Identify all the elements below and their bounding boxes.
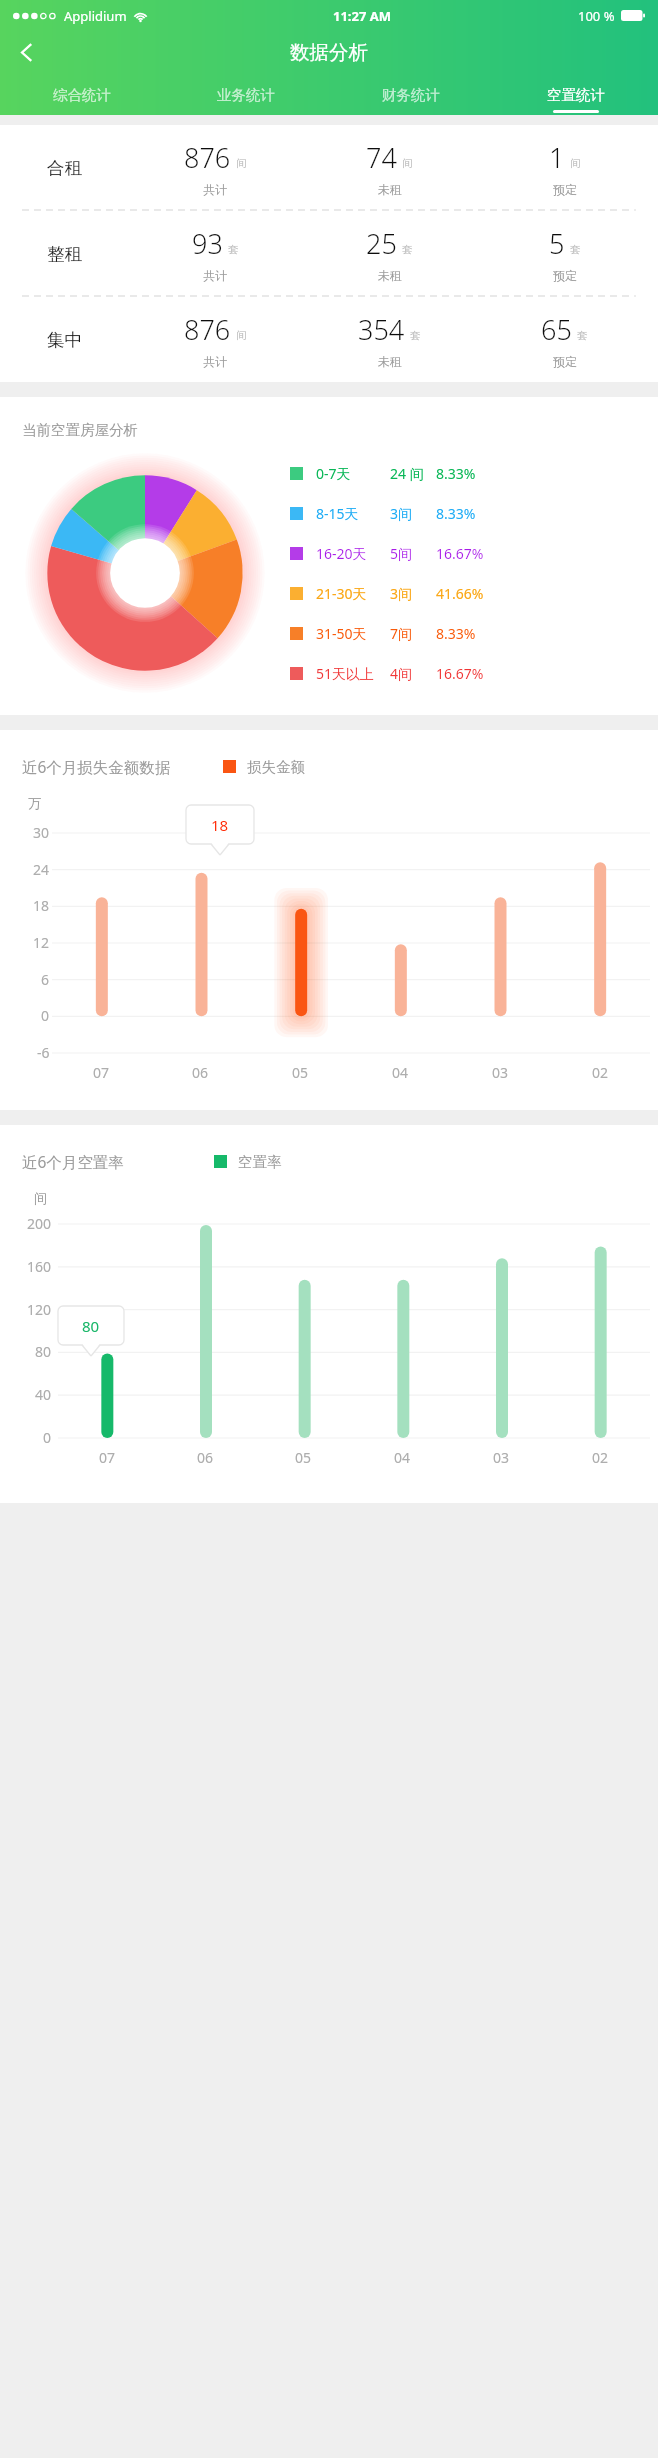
staticText: 25 [366,225,397,262]
staticText: 套 [570,243,581,256]
button[interactable]: Back [5,30,50,75]
staticText: 51天以上 [316,664,375,683]
staticText: 套 [577,329,588,342]
staticText: 8.33% [436,624,476,643]
staticText: 间 [236,329,247,342]
staticText: 0 [41,1006,50,1025]
staticText: 集中 [47,329,82,351]
staticText: 0 [43,1428,52,1447]
staticText: 近6个月损失金额数据 [22,756,171,777]
staticText: 空置率 [238,1153,282,1171]
staticText: 数据分析 [290,40,368,65]
staticText: 预定 [553,268,577,283]
staticText: -6 [37,1043,50,1062]
staticText: 18 [33,896,50,915]
staticText: 07 [93,1063,110,1082]
button[interactable]: 0-7天 [290,453,658,493]
staticText: 24 [33,860,50,879]
staticText: 间 [34,1190,47,1206]
staticText: 万 [28,795,41,811]
staticText: Applidium [64,7,127,25]
staticText: 间 [402,157,413,170]
staticText: 5 [549,225,565,262]
button[interactable]: 16-20天 [290,533,658,573]
staticText: 财务统计 [382,86,440,104]
staticText: 04 [394,1448,411,1467]
staticText: 损失金额 [247,758,305,776]
staticText: 7间 [390,624,413,643]
staticText: 41.66% [436,584,484,603]
staticText: 综合统计 [53,86,111,104]
staticText: 16.67% [436,544,484,563]
staticText: 业务统计 [217,86,275,104]
staticText: 间 [570,157,581,170]
staticText: 套 [410,329,421,342]
staticText: 200 [27,1214,52,1233]
staticText: 8.33% [436,464,476,483]
staticText: 套 [402,243,413,256]
staticText: 05 [292,1063,309,1082]
staticText: 预定 [553,182,577,197]
staticText: 整租 [47,243,82,265]
staticText: 预定 [553,354,577,369]
staticText: 合租 [47,157,82,179]
staticText: 未租 [378,354,402,369]
staticText: 共计 [203,182,227,197]
staticText: 06 [192,1063,209,1082]
staticText: 03 [492,1063,509,1082]
staticText: 共计 [203,354,227,369]
button[interactable]: 集中 [0,297,658,382]
staticText: 未租 [378,182,402,197]
staticText: 02 [592,1063,609,1082]
staticText: 16.67% [436,664,484,683]
button[interactable]: 整租 [0,211,658,296]
staticText: 65 [541,311,572,348]
staticText: 8-15天 [316,504,359,523]
staticText: 21-30天 [316,584,367,603]
staticText: 0-7天 [316,464,351,483]
staticText: 24 间 [390,464,424,483]
staticText: 100 % [578,7,615,25]
staticText: 80 [35,1342,52,1361]
staticText: 876 [184,139,231,176]
staticText: 160 [27,1257,52,1276]
staticText: 近6个月空置率 [22,1151,124,1172]
staticText: 876 [184,311,231,348]
button[interactable]: 综合统计 [0,75,164,115]
staticText: 30 [33,823,50,842]
staticText: 6 [41,970,50,989]
staticText: 03 [493,1448,510,1467]
staticText: 18 [211,815,229,835]
staticText: 间 [236,157,247,170]
staticText: 1 [549,139,565,176]
staticText: 11:27 AM [333,7,392,25]
button[interactable]: 合租 [0,125,658,210]
staticText: 空置统计 [547,86,605,104]
button[interactable]: 8-15天 [290,493,658,533]
staticText: 3间 [390,504,413,523]
staticText: 4间 [390,664,413,683]
button[interactable]: 业务统计 [164,75,328,115]
staticText: 40 [35,1385,52,1404]
staticText: 未租 [378,268,402,283]
staticText: 04 [392,1063,409,1082]
staticText: 12 [33,933,50,952]
button[interactable]: 财务统计 [328,75,493,115]
staticText: 02 [592,1448,609,1467]
staticText: 共计 [203,268,227,283]
button[interactable]: 31-50天 [290,613,658,653]
button[interactable]: 51天以上 [290,653,658,693]
staticText: 31-50天 [316,624,367,643]
staticText: 8.33% [436,504,476,523]
staticText: 93 [192,225,223,262]
staticText: 当前空置房屋分析 [22,421,138,439]
staticText: 80 [82,1316,100,1336]
staticText: 05 [295,1448,312,1467]
staticText: 120 [27,1300,52,1319]
staticText: 354 [358,311,405,348]
button[interactable]: 21-30天 [290,573,658,613]
staticText: 5间 [390,544,413,563]
staticText: 07 [99,1448,116,1467]
button[interactable]: 空置统计 [493,75,658,115]
staticText: 74 [366,139,397,176]
